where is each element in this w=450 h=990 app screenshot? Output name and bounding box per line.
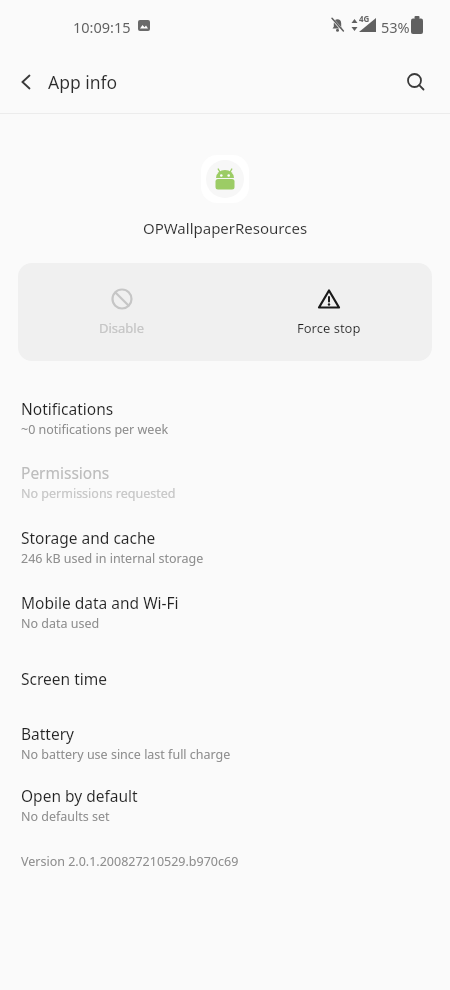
button[interactable]: Mobile data and Wi-Fi [0, 584, 450, 642]
staticText: OPWallpaperResources [0, 218, 450, 238]
staticText: Mobile data and Wi-Fi [21, 592, 179, 613]
staticText: No permissions requested [21, 485, 176, 502]
staticText: ~0 notifications per week [21, 421, 169, 438]
button[interactable]: Notifications [0, 390, 450, 448]
staticText: Permissions [21, 462, 110, 483]
staticText: 246 kB used in internal storage [21, 550, 204, 567]
button[interactable]: Battery [0, 715, 450, 773]
staticText: Version 2.0.1.200827210529.b970c69 [21, 853, 239, 870]
staticText: Force stop [297, 319, 361, 337]
staticText: Disable [99, 319, 145, 337]
staticText: Battery [21, 723, 75, 744]
button[interactable] [8, 64, 44, 100]
button[interactable]: Screen time [0, 660, 450, 699]
button[interactable]: Force stop [225, 263, 432, 361]
staticText: Screen time [21, 668, 107, 689]
staticText: No defaults set [21, 808, 110, 825]
staticText: No data used [21, 615, 100, 632]
button[interactable]: Open by default [0, 777, 450, 835]
button[interactable]: Disable [18, 263, 225, 361]
button[interactable]: Permissions [0, 454, 450, 512]
staticText: Open by default [21, 785, 138, 806]
staticText: App info [48, 70, 118, 94]
staticText: Storage and cache [21, 527, 156, 548]
button[interactable] [398, 64, 434, 100]
button[interactable]: Storage and cache [0, 519, 450, 577]
staticText: 10:09:15 [73, 17, 131, 37]
staticText: No battery use since last full charge [21, 746, 231, 763]
staticText: 4G [359, 13, 370, 24]
staticText: 53% [381, 17, 410, 37]
staticText: Notifications [21, 398, 114, 419]
